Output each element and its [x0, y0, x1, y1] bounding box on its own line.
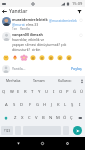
- button[interactable]: M: [54, 111, 61, 124]
- button[interactable]: Kullanıcı: [52, 76, 78, 85]
- button[interactable]: G: [34, 98, 41, 111]
- staticText: Q: [2, 89, 6, 95]
- staticText: Ğ: [73, 89, 77, 95]
- button[interactable]: Backspace: [75, 111, 85, 124]
- button[interactable]: Home: [36, 137, 49, 150]
- staticText: ?123: [4, 129, 11, 133]
- staticText: D: [20, 102, 24, 108]
- button[interactable]: vanşan00 ilimsah: [0, 31, 85, 51]
- button[interactable]: C: [26, 111, 33, 124]
- button[interactable]: Ç: [68, 111, 75, 124]
- staticText: Ü: [80, 89, 84, 95]
- staticText: Z: [14, 115, 17, 121]
- button[interactable]: X: [19, 111, 26, 124]
- button[interactable]: Emoji: [46, 51, 55, 61]
- staticText: Kullanıcı: [58, 78, 72, 83]
- staticText: M: [56, 115, 60, 121]
- button[interactable]: Back: [12, 137, 25, 150]
- button[interactable]: Y: [36, 85, 43, 98]
- button[interactable]: F: [26, 98, 34, 111]
- button[interactable]: Emoji: [55, 51, 64, 61]
- button[interactable]: muratdemirelektrik: [0, 16, 85, 31]
- staticText: I: [79, 102, 81, 108]
- staticText: Paylaş: [71, 66, 82, 71]
- button[interactable]: Send: [70, 124, 85, 137]
- staticText: muratdemirelektrik: [12, 17, 48, 22]
- button[interactable]: Merhaba: [0, 76, 26, 85]
- button[interactable]: Emoji: [19, 51, 28, 61]
- button[interactable]: Shift: [0, 111, 11, 124]
- staticText: F: [29, 102, 32, 108]
- staticText: elms.33: [25, 22, 39, 27]
- button[interactable]: Ğ: [71, 85, 78, 98]
- button[interactable]: L: [62, 98, 69, 111]
- staticText: Yanıtlar: [9, 8, 28, 15]
- button[interactable]: A: [2, 98, 10, 111]
- button[interactable]: Tamam: [26, 76, 52, 85]
- staticText: Tamam: [33, 78, 45, 83]
- staticText: Y: [38, 89, 41, 95]
- staticText: vanşan00 ilimsah: [12, 32, 43, 37]
- button[interactable]: Yanıtla...: [0, 61, 85, 76]
- button[interactable]: B: [40, 111, 47, 124]
- button[interactable]: Emoji: [1, 51, 10, 61]
- staticText: P: [66, 89, 69, 95]
- button[interactable]: Emoji: [10, 51, 19, 61]
- staticText: S: [13, 102, 16, 108]
- staticText: Yanıtla...: [12, 66, 26, 71]
- button[interactable]: T: [29, 85, 36, 98]
- button[interactable]: S: [10, 98, 18, 111]
- button[interactable]: Ş: [69, 98, 76, 111]
- staticText: I: [53, 89, 55, 95]
- button[interactable]: Q: [0, 85, 8, 98]
- button[interactable]: J: [48, 98, 55, 111]
- button[interactable]: Recents: [61, 137, 74, 150]
- button[interactable]: Ö: [61, 111, 68, 124]
- staticText: A: [5, 102, 8, 108]
- staticText: 15:09: [72, 1, 83, 6]
- button[interactable]: H: [41, 98, 48, 111]
- button[interactable]: E: [15, 85, 22, 98]
- button[interactable]: P: [64, 85, 71, 98]
- button[interactable]: Emoji: [37, 51, 46, 61]
- button[interactable]: W: [8, 85, 15, 98]
- staticText: @muratdemirelektrik: [49, 18, 77, 22]
- button[interactable]: I: [76, 98, 83, 111]
- staticText: dönuşturk?, çirkin: [12, 47, 41, 51]
- button[interactable]: Emoji: [28, 51, 37, 61]
- staticText: B: [42, 115, 45, 121]
- button[interactable]: Paylaş: [69, 65, 84, 72]
- button[interactable]: Yanıtla: [20, 27, 30, 31]
- staticText: Ö: [63, 115, 67, 121]
- staticText: Ş: [71, 102, 74, 108]
- staticText: K: [57, 102, 60, 108]
- staticText: @murat: [12, 22, 25, 27]
- button[interactable]: U: [43, 85, 50, 98]
- button[interactable]: I: [50, 85, 57, 98]
- button[interactable]: Back: [0, 7, 9, 16]
- staticText: O: [59, 89, 63, 95]
- button[interactable]: V: [33, 111, 40, 124]
- staticText: Merhaba: [6, 78, 21, 83]
- staticText: Ç: [70, 115, 73, 121]
- button[interactable]: Emoji: [64, 51, 73, 61]
- staticText: X: [21, 115, 24, 121]
- button[interactable]: D: [18, 98, 26, 111]
- staticText: hazırdılar, etkinlik ve: [12, 37, 46, 42]
- staticText: C: [28, 115, 31, 121]
- button[interactable]: R: [22, 85, 29, 98]
- button[interactable]: Ü: [78, 85, 85, 98]
- button[interactable]: Z: [11, 111, 19, 124]
- button[interactable]: ?123: [1, 126, 13, 135]
- button[interactable]: K: [55, 98, 62, 111]
- button[interactable]: Voice input: [78, 76, 85, 85]
- staticText: N: [49, 115, 53, 121]
- button[interactable]: Filter: [75, 7, 84, 16]
- button[interactable]: N: [47, 111, 54, 124]
- button[interactable]: O: [57, 85, 64, 98]
